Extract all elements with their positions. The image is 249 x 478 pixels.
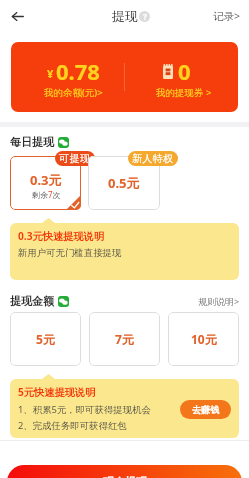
staticText: 提现金额: [10, 294, 54, 308]
button[interactable]: 去赚钱: [180, 400, 231, 419]
staticText: 现在提现: [103, 475, 147, 478]
staticText: 提现: [112, 8, 138, 24]
staticText: 剩余7次: [32, 189, 61, 200]
staticText: 1、积累5元，即可获得提现机会: [18, 403, 151, 416]
staticText: 去赚钱: [192, 404, 219, 415]
button[interactable]: 规则说明>: [198, 295, 240, 307]
staticText: 0.78: [56, 56, 100, 86]
staticText: 5元: [36, 331, 55, 347]
staticText: 0.3元快速提现说明: [18, 229, 104, 243]
staticText: ?: [143, 11, 147, 22]
button[interactable]: Back: [5, 4, 29, 28]
button[interactable]: 7元: [89, 312, 160, 366]
staticText: 规则说明>: [198, 295, 240, 307]
staticText: 我的提现券 >: [156, 86, 212, 99]
button[interactable]: 10元: [168, 312, 239, 366]
button[interactable]: ¥: [11, 42, 124, 112]
staticText: 10元: [191, 331, 217, 347]
staticText: 新用户可无门槛直接提现: [18, 247, 122, 259]
staticText: ¥: [47, 66, 54, 81]
staticText: 我的余额(元)>: [44, 86, 103, 99]
button[interactable]: 5元: [10, 312, 81, 366]
staticText: 5元快速提现说明: [18, 385, 96, 399]
button[interactable]: Help: [139, 11, 150, 22]
button[interactable]: 0.5元: [88, 156, 160, 210]
staticText: 7元: [115, 331, 134, 347]
staticText: 可提现: [59, 152, 91, 165]
staticText: 每日提现: [10, 135, 54, 149]
staticText: 0: [178, 56, 191, 86]
staticText: 0.5元: [108, 174, 140, 192]
button[interactable]: 现在提现: [7, 465, 242, 478]
staticText: 0.3元: [30, 171, 62, 189]
button[interactable]: 0.3元: [10, 156, 81, 210]
staticText: 2、完成任务即可获得红包: [18, 419, 127, 432]
staticText: 记录>: [213, 9, 241, 23]
button[interactable]: 0: [125, 42, 238, 112]
staticText: 新人特权: [132, 152, 174, 165]
button[interactable]: 记录>: [205, 5, 249, 27]
